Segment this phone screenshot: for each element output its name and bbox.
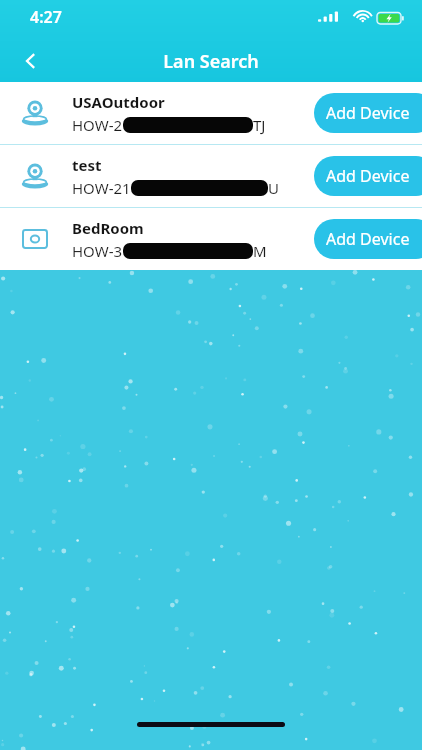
staticText: HOW-21 [72,178,131,198]
staticText: Add Device [326,102,410,124]
button[interactable]: Add Device [314,156,422,196]
staticText: TJ [253,115,266,135]
button[interactable]: Add Device [314,219,422,259]
button[interactable]: test [0,145,422,207]
staticText: USAOutdoor [72,92,165,112]
button[interactable]: Back [8,38,54,84]
staticText: Lan Search [163,49,259,74]
staticText: HOW-2 [72,115,123,135]
button[interactable]: USAOutdoor [0,82,422,144]
staticText: test [72,155,102,175]
staticText: Add Device [326,165,410,187]
button[interactable]: BedRoom [0,208,422,270]
button[interactable]: Add Device [314,93,422,133]
staticText: BedRoom [72,218,144,238]
staticText: Add Device [326,228,410,250]
staticText: HOW-3 [72,241,123,261]
staticText: 4:27 [30,6,62,28]
staticText: U [268,178,279,198]
staticText: M [253,241,267,261]
